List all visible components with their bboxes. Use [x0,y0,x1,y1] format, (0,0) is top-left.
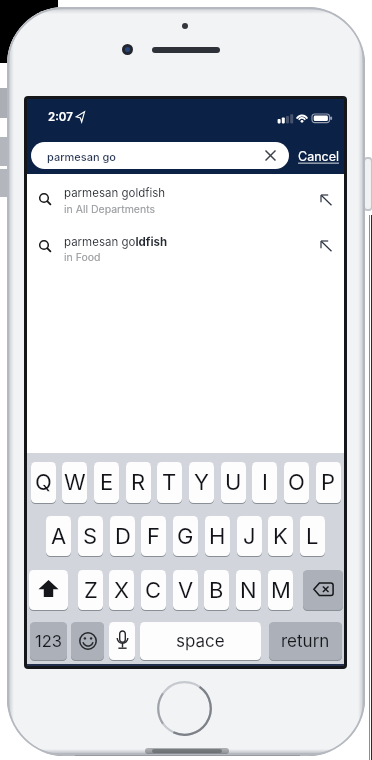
staticText: E [100,469,114,496]
staticText: I [262,469,268,496]
staticText: Z [84,577,98,604]
staticText: B [209,577,224,604]
staticText: parmesan goldfish [64,186,166,200]
staticText: space [176,631,225,652]
staticText: Q [35,469,52,496]
staticText: D [115,523,131,550]
staticText: return [281,631,330,652]
staticText: H [209,523,226,550]
staticText: in All Departments [64,203,156,216]
staticText: R [131,469,146,496]
staticText: parmesan goldfish [64,235,168,249]
staticText: F [147,523,160,550]
staticText: K [273,523,288,550]
staticText: T [162,469,177,496]
staticText: S [83,523,98,550]
staticText: W [64,469,86,496]
staticText: Cancel [298,149,339,164]
staticText: 123 [35,631,62,651]
staticText: P [321,469,336,496]
staticText: U [225,469,242,496]
staticText: V [178,577,194,604]
staticText: X [114,577,130,604]
staticText: O [288,469,305,496]
staticText: C [145,577,162,604]
staticText: M [271,577,291,604]
staticText: 2:07 [48,110,73,124]
staticText: N [240,577,257,604]
staticText: L [306,523,319,550]
staticText: G [177,523,194,550]
staticText: Y [194,469,209,496]
staticText: A [51,523,67,550]
staticText: parmesan go [47,150,116,163]
staticText: in Food [64,251,101,264]
staticText: J [243,523,256,550]
